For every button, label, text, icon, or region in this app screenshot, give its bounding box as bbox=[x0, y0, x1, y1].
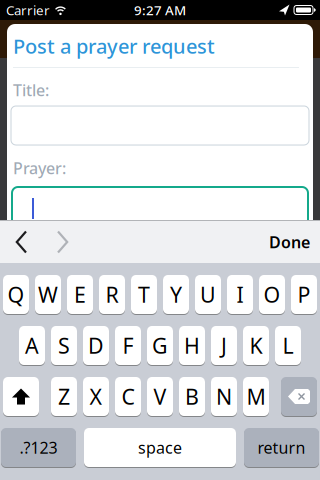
button[interactable]: P bbox=[291, 275, 317, 314]
staticText: A bbox=[25, 331, 39, 360]
button[interactable]: N bbox=[211, 377, 237, 416]
staticText: E bbox=[74, 280, 86, 309]
staticText: I bbox=[236, 280, 243, 309]
staticText: X bbox=[89, 382, 102, 411]
button[interactable]: T bbox=[131, 275, 157, 314]
staticText: N bbox=[216, 382, 232, 411]
staticText: Prayer: bbox=[13, 157, 66, 179]
staticText: 9:27 AM bbox=[134, 1, 186, 19]
button[interactable]: Shift bbox=[3, 377, 39, 416]
button[interactable]: G bbox=[147, 326, 173, 365]
button[interactable]: V bbox=[147, 377, 173, 416]
staticText: R bbox=[105, 280, 118, 309]
button[interactable]: space bbox=[84, 428, 236, 467]
staticText: J bbox=[221, 331, 227, 360]
staticText: Q bbox=[7, 280, 24, 309]
button[interactable]: W bbox=[35, 275, 61, 314]
staticText: Z bbox=[58, 382, 70, 411]
staticText: K bbox=[249, 331, 262, 360]
staticText: T bbox=[138, 280, 150, 309]
button[interactable]: C bbox=[115, 377, 141, 416]
button[interactable]: .?123 bbox=[1, 428, 76, 467]
button[interactable]: J bbox=[211, 326, 237, 365]
button[interactable]: Y bbox=[163, 275, 189, 314]
staticText: Post a prayer request bbox=[13, 33, 215, 59]
staticText: C bbox=[121, 382, 134, 411]
button[interactable]: H bbox=[179, 326, 205, 365]
button[interactable]: I bbox=[227, 275, 253, 314]
button[interactable]: A bbox=[19, 326, 45, 365]
button[interactable]: U bbox=[195, 275, 221, 314]
button[interactable]: Next field bbox=[27, 231, 69, 252]
staticText: D bbox=[88, 331, 104, 360]
staticText: L bbox=[282, 331, 293, 360]
button[interactable]: X bbox=[83, 377, 109, 416]
staticText: Y bbox=[170, 280, 182, 309]
button[interactable]: B bbox=[179, 377, 205, 416]
staticText: Title: bbox=[13, 79, 49, 101]
staticText: return bbox=[257, 437, 305, 458]
button[interactable]: Z bbox=[51, 377, 77, 416]
button[interactable]: Delete bbox=[281, 377, 317, 416]
button[interactable]: D bbox=[83, 326, 109, 365]
staticText: P bbox=[297, 280, 310, 309]
staticText: G bbox=[152, 331, 168, 360]
staticText: M bbox=[246, 382, 265, 411]
button[interactable]: O bbox=[259, 275, 285, 314]
staticText: .?123 bbox=[19, 437, 57, 458]
staticText: B bbox=[185, 382, 199, 411]
staticText: O bbox=[263, 280, 280, 309]
staticText: F bbox=[122, 331, 133, 360]
staticText: W bbox=[38, 280, 58, 309]
button[interactable]: Title bbox=[7, 106, 309, 145]
staticText: V bbox=[153, 382, 166, 411]
button[interactable]: S bbox=[51, 326, 77, 365]
button[interactable]: Done bbox=[269, 231, 320, 253]
button[interactable]: Prayer bbox=[7, 187, 308, 243]
button[interactable]: M bbox=[243, 377, 269, 416]
button[interactable]: Previous field bbox=[0, 231, 27, 252]
button[interactable]: Q bbox=[3, 275, 29, 314]
staticText: H bbox=[184, 331, 200, 360]
button[interactable]: F bbox=[115, 326, 141, 365]
staticText: space bbox=[138, 437, 182, 458]
button[interactable]: E bbox=[67, 275, 93, 314]
staticText: U bbox=[200, 280, 216, 309]
staticText: Done bbox=[269, 231, 310, 253]
button[interactable]: L bbox=[275, 326, 301, 365]
button[interactable]: R bbox=[99, 275, 125, 314]
button[interactable]: K bbox=[243, 326, 269, 365]
staticText: Carrier bbox=[6, 1, 50, 19]
staticText: S bbox=[58, 331, 70, 360]
button[interactable]: return bbox=[244, 428, 319, 467]
